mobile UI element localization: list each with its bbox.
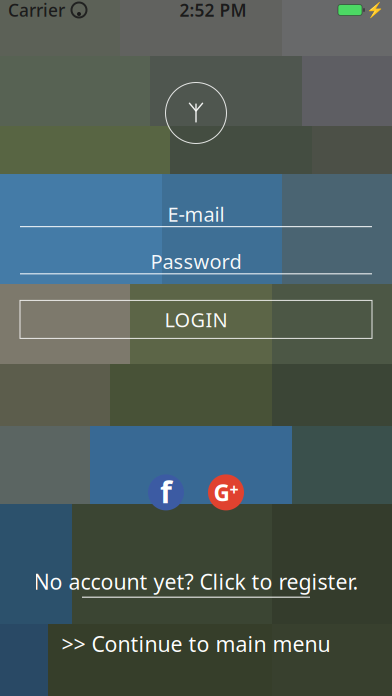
- staticText: G: [213, 477, 229, 507]
- button[interactable]: Sign in with Google: [206, 472, 246, 512]
- button[interactable]: Password: [20, 249, 372, 274]
- staticText: No account yet? Click to register.: [33, 567, 358, 596]
- staticText: 2:52 PM: [179, 0, 246, 21]
- button[interactable]: LOGIN: [20, 300, 372, 338]
- button[interactable]: >> Continue to main menu: [51, 626, 340, 662]
- button[interactable]: No account yet? Click to register.: [23, 563, 368, 602]
- staticText: LOGIN: [164, 306, 227, 333]
- staticText: Carrier: [8, 0, 65, 21]
- staticText: f: [160, 471, 172, 512]
- staticText: +: [229, 479, 238, 500]
- staticText: Password: [150, 248, 241, 274]
- button[interactable]: Upload: [164, 81, 228, 145]
- button[interactable]: E-mail: [20, 202, 372, 227]
- staticText: ⚡: [366, 2, 384, 18]
- staticText: >> Continue to main menu: [61, 630, 330, 658]
- staticText: E-mail: [167, 201, 224, 227]
- button[interactable]: Sign in with Facebook: [146, 472, 186, 512]
